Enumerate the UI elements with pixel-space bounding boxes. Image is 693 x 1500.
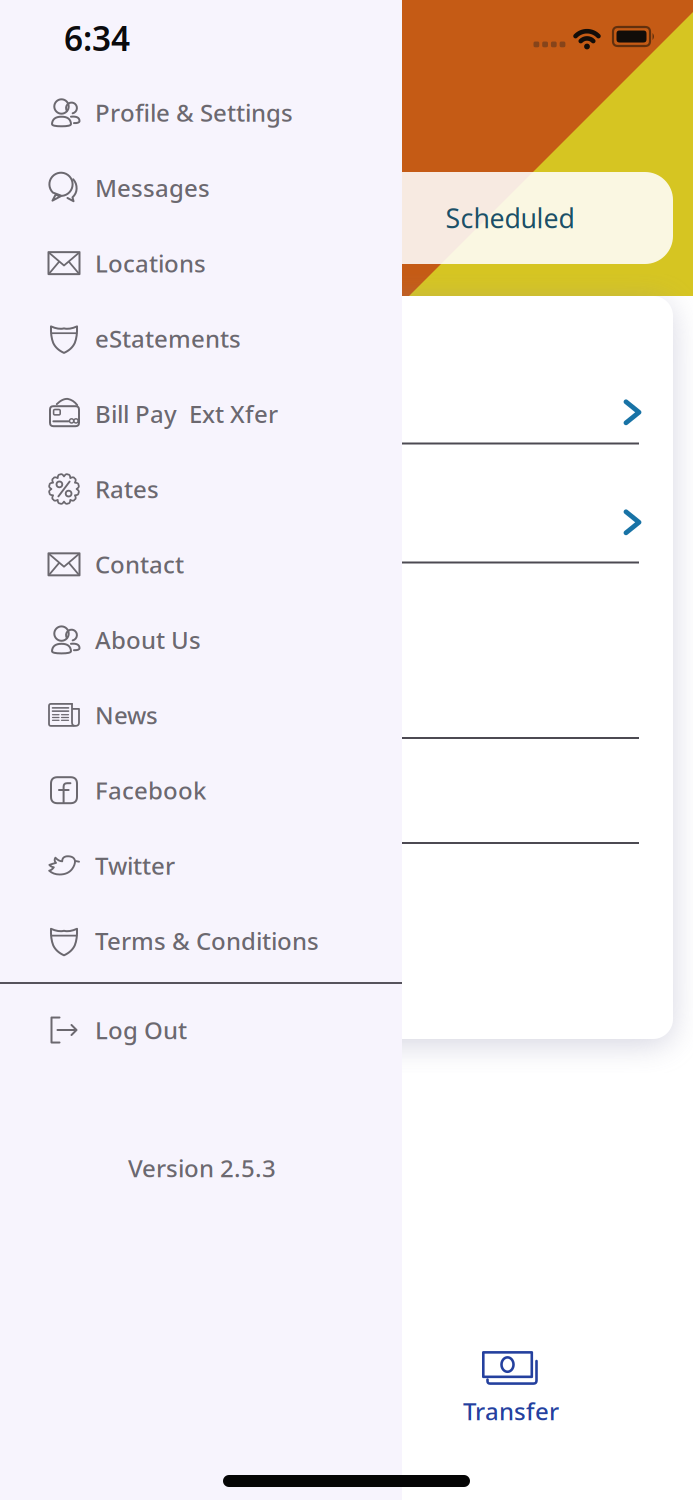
staticText: About Us bbox=[95, 624, 201, 656]
staticText: Bill Pay Ext Xfer bbox=[95, 398, 278, 430]
button[interactable]: Select account bbox=[617, 397, 647, 427]
button[interactable]: Messages bbox=[0, 150, 402, 225]
staticText: Profile & Settings bbox=[95, 97, 293, 128]
button[interactable]: Facebook bbox=[0, 753, 402, 828]
button[interactable]: Select account bbox=[617, 507, 647, 537]
staticText: Terms & Conditions bbox=[95, 925, 319, 957]
staticText: Scheduled bbox=[445, 200, 574, 236]
staticText: Twitter bbox=[95, 850, 175, 881]
staticText: Facebook bbox=[95, 774, 206, 806]
button[interactable]: News bbox=[0, 677, 402, 752]
button[interactable]: Profile & Settings bbox=[0, 75, 402, 150]
staticText: Log Out bbox=[95, 1014, 187, 1046]
staticText: eStatements bbox=[95, 322, 241, 354]
button[interactable]: Scheduled bbox=[347, 172, 673, 264]
button[interactable]: Terms & Conditions bbox=[0, 903, 402, 978]
staticText: Version 2.5.3 bbox=[128, 1152, 276, 1184]
button[interactable]: Twitter bbox=[0, 828, 402, 903]
button[interactable]: Bill Pay Ext Xfer bbox=[0, 376, 402, 451]
button[interactable]: Transfer bbox=[441, 1348, 581, 1428]
staticText: Transfer bbox=[463, 1395, 559, 1427]
button[interactable]: Locations bbox=[0, 226, 402, 301]
button[interactable]: eStatements bbox=[0, 301, 402, 376]
staticText: Rates bbox=[95, 473, 159, 505]
button[interactable]: Contact bbox=[0, 527, 402, 602]
staticText: Messages bbox=[95, 172, 210, 204]
button[interactable]: Rates bbox=[0, 451, 402, 526]
button[interactable]: Log Out bbox=[0, 992, 402, 1067]
staticText: Contact bbox=[95, 548, 184, 580]
button[interactable]: About Us bbox=[0, 602, 402, 677]
staticText: 6:34 bbox=[64, 16, 130, 60]
staticText: News bbox=[95, 699, 158, 731]
staticText: Locations bbox=[95, 247, 206, 279]
